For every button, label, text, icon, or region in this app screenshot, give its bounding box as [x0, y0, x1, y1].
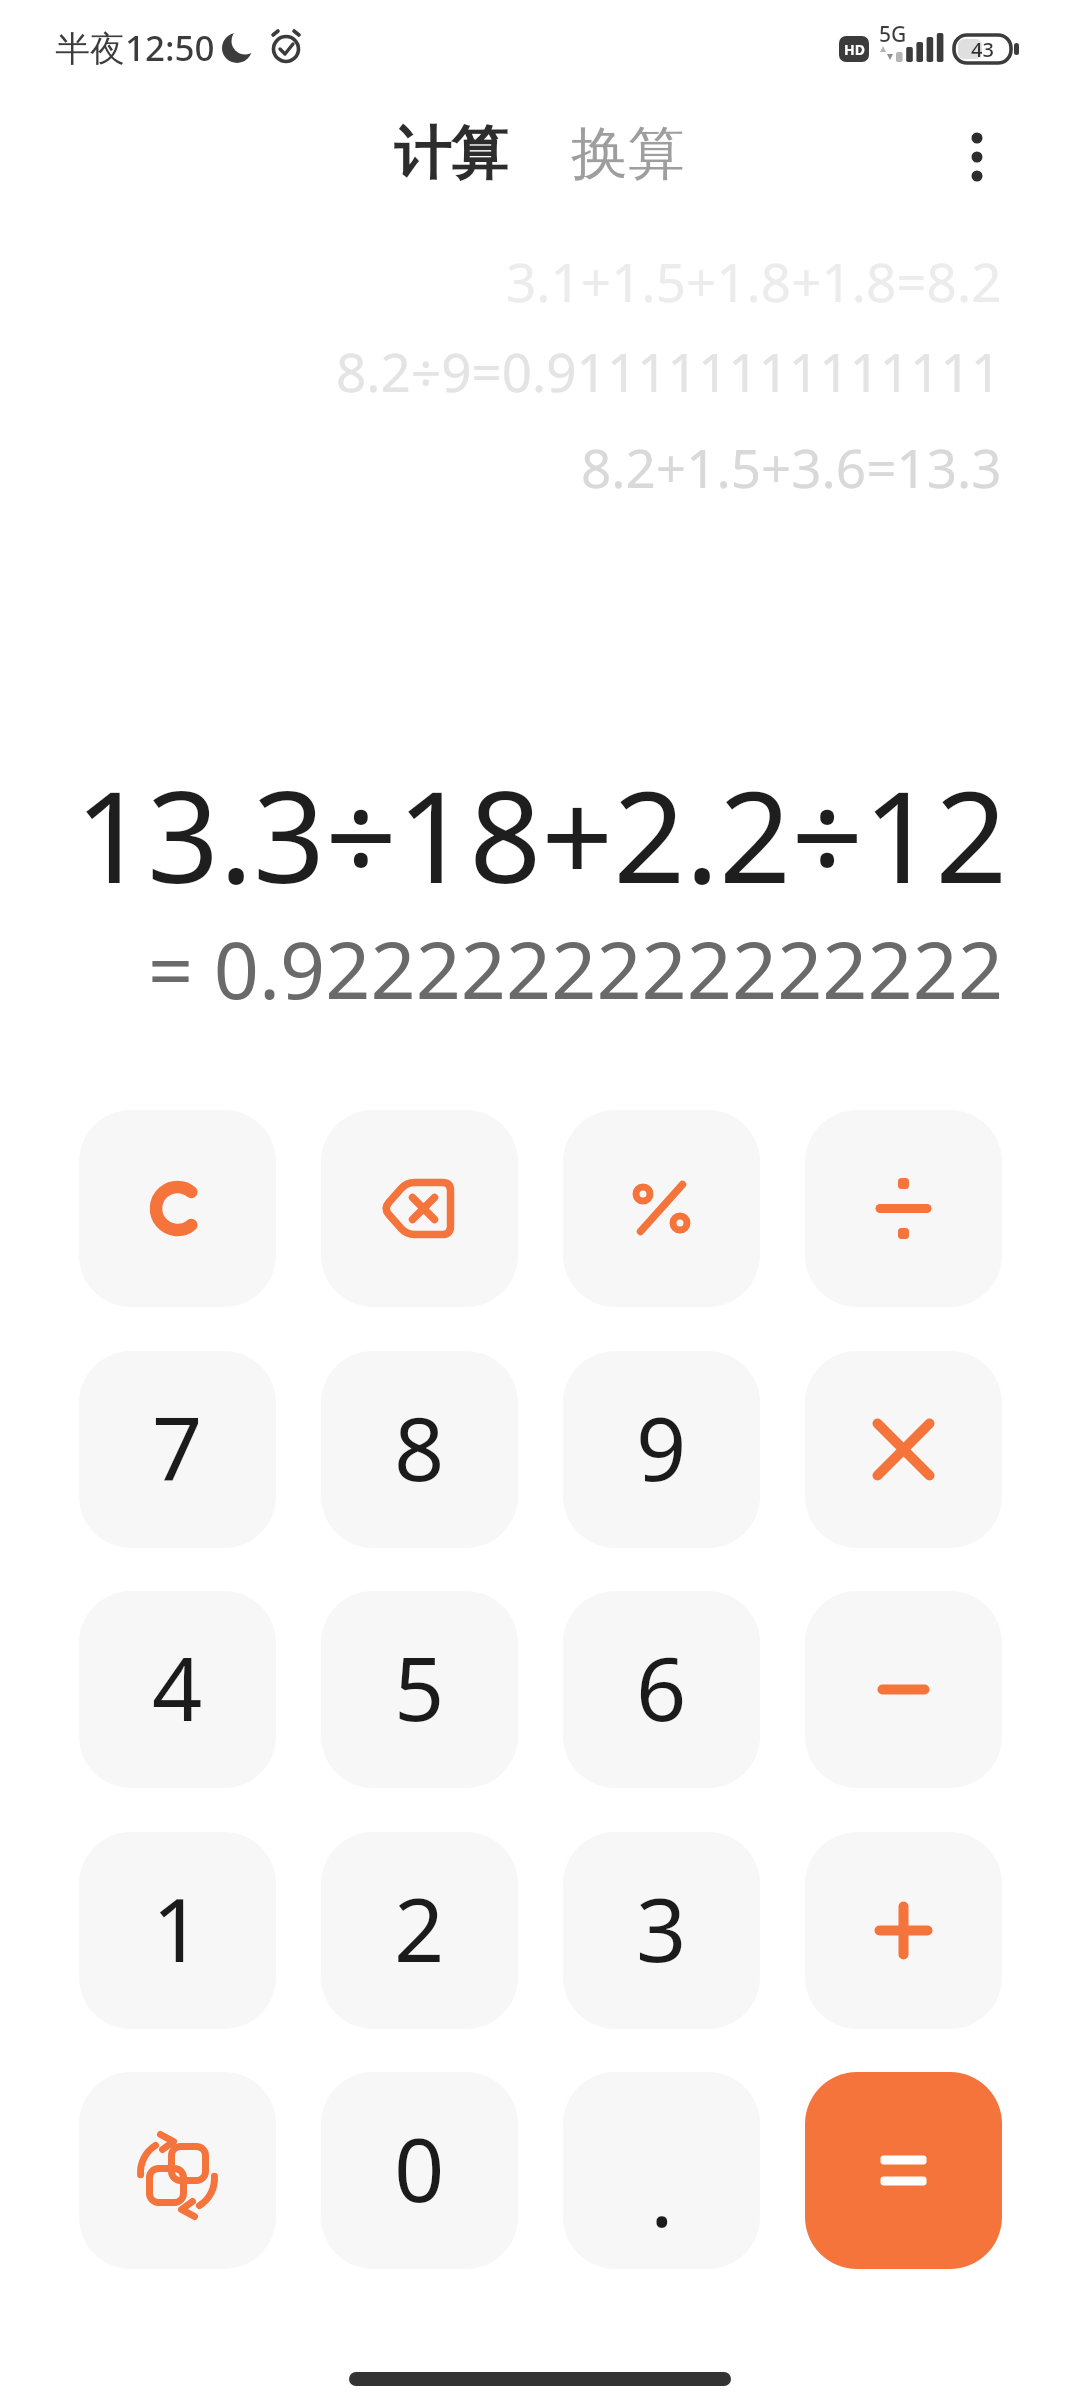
staticText: 1	[152, 1868, 203, 1988]
button[interactable]: 7	[79, 1351, 276, 1548]
button[interactable]	[79, 2072, 276, 2269]
button[interactable]: 5	[321, 1591, 518, 1788]
staticText: 6	[636, 1627, 687, 1747]
button[interactable]: 9	[563, 1351, 760, 1548]
staticText: 8	[394, 1387, 445, 1507]
staticText: 换算	[571, 118, 685, 184]
staticText: = 0.9222222222222222	[148, 915, 1004, 1015]
button[interactable]: 换算	[571, 118, 685, 184]
button[interactable]: 1	[79, 1832, 276, 2029]
staticText: 8.2÷9=0.911111111111111	[336, 335, 1002, 407]
staticText: 4	[152, 1627, 203, 1747]
staticText: 7	[152, 1387, 203, 1507]
button[interactable]	[805, 2072, 1002, 2269]
staticText: 2	[394, 1868, 445, 1988]
button[interactable]	[321, 1110, 518, 1307]
button[interactable]	[563, 1110, 760, 1307]
staticText: 计算	[394, 118, 508, 184]
staticText: 3.1+1.5+1.8+1.8=8.2	[506, 245, 1002, 317]
button[interactable]: .	[563, 2072, 760, 2269]
button[interactable]: 8	[321, 1351, 518, 1548]
button[interactable]	[805, 1591, 1002, 1788]
button[interactable]: 计算	[394, 118, 508, 184]
staticText: 半夜12:50	[55, 24, 215, 72]
button[interactable]: 6	[563, 1591, 760, 1788]
staticText: 8.2+1.5+3.6=13.3	[581, 431, 1002, 503]
staticText: 5G	[879, 20, 907, 46]
button[interactable]	[805, 1832, 1002, 2029]
button[interactable]: 3	[563, 1832, 760, 2029]
button[interactable]: 0	[321, 2072, 518, 2269]
button[interactable]	[805, 1351, 1002, 1548]
staticText: 0	[394, 2108, 445, 2228]
staticText: 5	[394, 1627, 445, 1747]
button[interactable]	[79, 1110, 276, 1307]
button[interactable]	[805, 1110, 1002, 1307]
button[interactable]: 4	[79, 1591, 276, 1788]
staticText: 9	[636, 1387, 687, 1507]
staticText: .	[650, 2133, 674, 2253]
staticText: 13.3÷18+2.2÷12	[75, 748, 1008, 898]
button[interactable]: 2	[321, 1832, 518, 2029]
staticText: HD	[844, 40, 865, 59]
staticText: 3	[636, 1868, 687, 1988]
staticText: 43	[971, 36, 994, 63]
button[interactable]	[945, 125, 1009, 189]
